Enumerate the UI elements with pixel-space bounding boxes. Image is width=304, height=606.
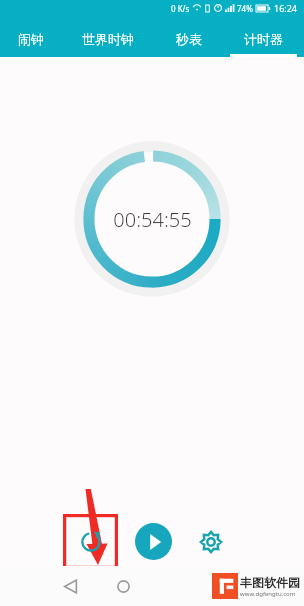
staticText: 丰图软件园 — [240, 575, 300, 590]
button[interactable]: Back — [55, 571, 85, 601]
staticText: 计时器 — [244, 31, 283, 47]
staticText: www.dgfengtu.com — [240, 590, 296, 598]
staticText: 世界时钟 — [82, 31, 134, 47]
button[interactable]: 秒表 — [155, 21, 222, 57]
button[interactable]: 计时器 — [222, 21, 304, 57]
button[interactable]: 世界时钟 — [61, 21, 155, 57]
staticText: 秒表 — [176, 31, 202, 47]
button[interactable]: 闹钟 — [0, 21, 61, 57]
button[interactable]: Home — [108, 571, 138, 601]
button[interactable]: Start — [135, 523, 172, 560]
staticText: 74% — [237, 3, 253, 14]
button[interactable]: Reset — [63, 514, 118, 569]
button[interactable]: Settings — [194, 525, 228, 559]
staticText: 00:54:55 — [113, 206, 192, 233]
staticText: 16:24 — [274, 2, 298, 14]
staticText: 闹钟 — [18, 31, 44, 47]
staticText: 0 K/s — [171, 3, 190, 14]
